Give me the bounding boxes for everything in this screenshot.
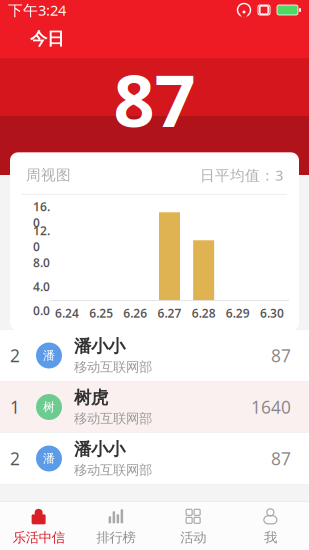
staticText: 1 bbox=[10, 395, 20, 418]
staticText: 87 bbox=[271, 344, 291, 367]
staticText: 周视图 bbox=[26, 166, 71, 184]
staticText: 我 bbox=[264, 529, 277, 546]
staticText: 下午3:24 bbox=[8, 0, 66, 20]
staticText: 2 bbox=[10, 447, 20, 470]
staticText: 树 bbox=[43, 400, 55, 414]
button[interactable]: 1 bbox=[0, 381, 309, 432]
staticText: 日平均值：3 bbox=[200, 165, 283, 185]
button[interactable]: 排行榜 bbox=[77, 502, 155, 550]
staticText: 8.0 bbox=[33, 255, 50, 271]
staticText: 乐活中信 bbox=[13, 529, 65, 546]
staticText: 4.0 bbox=[33, 279, 50, 295]
staticText: 潘小小 bbox=[74, 439, 125, 460]
button[interactable]: 我 bbox=[232, 502, 309, 550]
staticText: 1640 bbox=[251, 395, 291, 418]
button[interactable]: 2 bbox=[0, 330, 309, 381]
staticText: 2 bbox=[10, 344, 20, 367]
staticText: 移动互联网部 bbox=[74, 462, 152, 478]
staticText: 潘 bbox=[43, 451, 55, 466]
staticText: 87 bbox=[113, 51, 195, 147]
staticText: 6.30 bbox=[260, 305, 284, 321]
staticText: 树虎 bbox=[74, 387, 108, 408]
button[interactable]: 乐活中信 bbox=[0, 502, 77, 550]
button[interactable]: 活动 bbox=[154, 502, 232, 550]
staticText: 87 bbox=[271, 447, 291, 470]
staticText: 潘小小 bbox=[74, 336, 125, 357]
staticText: 6.26 bbox=[123, 305, 147, 321]
staticText: 排行榜 bbox=[96, 529, 135, 546]
staticText: 0.0 bbox=[33, 303, 50, 319]
staticText: 移动互联网部 bbox=[74, 359, 152, 375]
staticText: 6.29 bbox=[226, 305, 250, 321]
staticText: 6.27 bbox=[157, 305, 181, 321]
staticText: 6.25 bbox=[89, 305, 113, 321]
staticText: 潘 bbox=[43, 348, 55, 363]
button[interactable]: 2 bbox=[0, 433, 309, 484]
staticText: 移动互联网部 bbox=[74, 410, 152, 427]
staticText: 12.0 bbox=[33, 223, 50, 255]
staticText: 6.24 bbox=[55, 305, 79, 321]
staticText: 6.28 bbox=[192, 305, 216, 321]
staticText: 活动 bbox=[180, 529, 206, 546]
staticText: 今日 bbox=[30, 28, 64, 49]
staticText: 16.0 bbox=[33, 199, 50, 231]
